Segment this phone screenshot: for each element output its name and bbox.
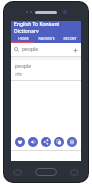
button[interactable]: Recents bbox=[14, 170, 21, 175]
button[interactable]: Favorite bbox=[15, 137, 25, 147]
button[interactable]: people bbox=[14, 46, 78, 53]
button[interactable]: Speak bbox=[28, 137, 38, 147]
staticText: HOME bbox=[18, 36, 29, 41]
button[interactable]: Share bbox=[41, 137, 51, 147]
button[interactable]: Copy bbox=[54, 137, 64, 147]
button[interactable]: people bbox=[11, 60, 81, 80]
button[interactable]: RECENT bbox=[58, 36, 81, 41]
staticText: RECENT bbox=[63, 36, 77, 41]
staticText: people bbox=[15, 63, 32, 70]
button[interactable]: Add word bbox=[72, 47, 78, 53]
button[interactable]: FAVORITE bbox=[35, 36, 58, 41]
button[interactable]: HOME bbox=[11, 36, 35, 41]
button[interactable]: Home bbox=[35, 168, 57, 176]
staticText: English To Konkani Dictionary bbox=[14, 21, 81, 33]
staticText: लोक bbox=[15, 72, 22, 77]
staticText: people bbox=[22, 46, 72, 53]
button[interactable]: Back bbox=[71, 170, 78, 175]
button[interactable]: List bbox=[67, 137, 77, 147]
staticText: FAVORITE bbox=[38, 36, 55, 41]
